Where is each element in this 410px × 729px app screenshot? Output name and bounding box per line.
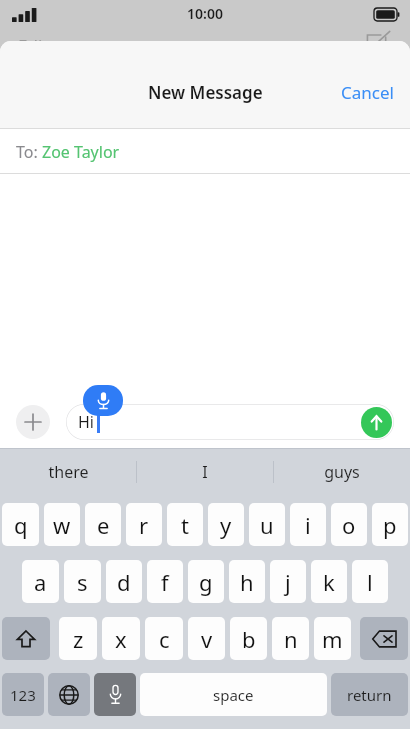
button[interactable]: z [59, 617, 97, 660]
staticText: guys [324, 461, 360, 483]
button[interactable]: p [372, 503, 408, 546]
staticText: z [73, 624, 84, 654]
button[interactable]: Shift [2, 617, 50, 660]
button[interactable]: n [272, 617, 309, 660]
staticText: there [48, 461, 89, 483]
button[interactable]: Cancel [325, 71, 410, 114]
staticText: return [347, 685, 392, 705]
staticText: Cancel [341, 81, 394, 104]
staticText: New Message [148, 81, 263, 104]
staticText: To: [16, 141, 42, 163]
button[interactable]: I [137, 448, 273, 496]
staticText: j [285, 567, 291, 597]
staticText: Zoe Taylor [42, 141, 120, 163]
staticText: x [115, 624, 127, 654]
button[interactable]: l [352, 560, 388, 603]
button[interactable]: c [145, 617, 183, 660]
button[interactable]: return [331, 673, 408, 716]
button[interactable]: w [44, 503, 80, 546]
button[interactable]: h [229, 560, 265, 603]
staticText: w [53, 510, 71, 540]
button[interactable]: x [102, 617, 140, 660]
staticText: v [201, 624, 213, 654]
staticText: t [181, 510, 189, 540]
button[interactable]: To: [0, 129, 410, 174]
staticText: space [213, 685, 254, 705]
button[interactable]: Dictate [94, 673, 136, 716]
button[interactable]: Dictate [83, 385, 123, 416]
button[interactable]: Backspace [360, 617, 408, 660]
button[interactable]: v [188, 617, 225, 660]
staticText: I [202, 461, 208, 483]
button[interactable]: Add attachment [16, 405, 50, 439]
button[interactable]: 123 [2, 673, 44, 716]
button[interactable]: m [314, 617, 351, 660]
button[interactable]: Hi [66, 404, 394, 440]
button[interactable]: k [311, 560, 347, 603]
staticText: l [367, 567, 373, 597]
staticText: y [220, 510, 232, 540]
staticText: e [97, 510, 110, 540]
staticText: 123 [10, 685, 36, 705]
button[interactable]: space [140, 673, 327, 716]
button[interactable]: b [230, 617, 267, 660]
staticText: Edit [18, 34, 49, 57]
staticText: u [260, 510, 274, 540]
button[interactable]: u [249, 503, 285, 546]
staticText: q [14, 510, 28, 540]
button[interactable]: t [167, 503, 203, 546]
staticText: i [305, 510, 311, 540]
button[interactable]: a [22, 560, 59, 603]
staticText: f [161, 567, 169, 597]
button[interactable]: s [64, 560, 101, 603]
staticText: o [342, 510, 356, 540]
button[interactable]: q [2, 503, 39, 546]
staticText: h [240, 567, 254, 597]
button[interactable]: Switch keyboard [48, 673, 90, 716]
staticText: n [284, 624, 298, 654]
staticText: a [34, 567, 47, 597]
staticText: b [242, 624, 256, 654]
button[interactable]: j [270, 560, 306, 603]
button[interactable]: there [0, 448, 136, 496]
button[interactable]: g [188, 560, 224, 603]
staticText: c [159, 624, 170, 654]
button[interactable]: i [290, 503, 326, 546]
button[interactable]: Send [361, 407, 392, 438]
button[interactable]: guys [274, 448, 410, 496]
button[interactable]: y [208, 503, 244, 546]
staticText: m [322, 624, 343, 654]
button[interactable]: d [106, 560, 142, 603]
staticText: d [117, 567, 131, 597]
staticText: p [383, 510, 397, 540]
staticText: 10:00 [187, 4, 223, 23]
button[interactable]: r [126, 503, 162, 546]
button[interactable]: e [85, 503, 121, 546]
staticText: r [139, 510, 149, 540]
button[interactable]: o [331, 503, 367, 546]
staticText: Hi [78, 411, 94, 433]
staticText: g [199, 567, 213, 597]
button[interactable]: f [147, 560, 183, 603]
staticText: s [77, 567, 88, 597]
staticText: k [323, 567, 335, 597]
